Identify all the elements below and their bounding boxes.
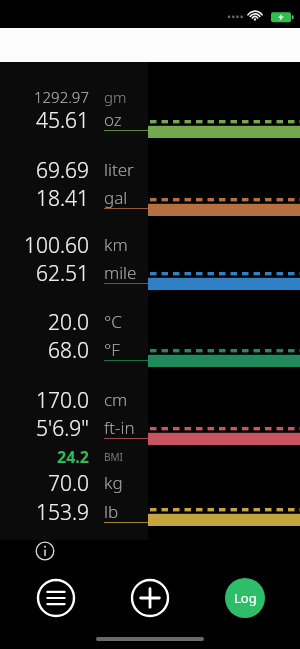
staticText: kg bbox=[104, 471, 123, 494]
button[interactable]: 100.60 bbox=[0, 231, 300, 258]
button[interactable]: 18.41 bbox=[0, 184, 300, 211]
staticText: 5'6.9" bbox=[36, 414, 89, 441]
button[interactable]: 20.0 bbox=[0, 308, 300, 335]
staticText: 20.0 bbox=[47, 308, 89, 335]
staticText: 18.41 bbox=[35, 184, 89, 211]
staticText: cm bbox=[104, 388, 128, 411]
staticText: oz bbox=[104, 108, 122, 131]
staticText: km bbox=[104, 233, 128, 256]
button[interactable]: 68.0 bbox=[0, 336, 300, 363]
staticText: 100.60 bbox=[23, 231, 89, 258]
staticText: gal bbox=[104, 186, 128, 209]
staticText: 62.51 bbox=[35, 259, 89, 286]
button[interactable]: Info bbox=[34, 540, 56, 562]
staticText: ft-in bbox=[104, 416, 135, 439]
staticText: 1292.97 bbox=[33, 87, 89, 107]
staticText: 170.0 bbox=[35, 386, 89, 413]
staticText: mile bbox=[104, 261, 137, 284]
staticText: Log bbox=[234, 589, 257, 607]
button[interactable]: 45.61 bbox=[0, 106, 300, 133]
staticText: lb bbox=[104, 500, 119, 523]
staticText: gm bbox=[104, 87, 127, 107]
button[interactable]: 170.0 bbox=[0, 386, 300, 413]
staticText: °F bbox=[104, 338, 120, 361]
button[interactable]: 5'6.9" bbox=[0, 414, 300, 441]
button[interactable]: 62.51 bbox=[0, 259, 300, 286]
staticText: °C bbox=[104, 310, 122, 333]
button[interactable]: Menu bbox=[36, 578, 76, 618]
staticText: liter bbox=[104, 158, 134, 181]
staticText: 69.69 bbox=[35, 156, 89, 183]
staticText: 70.0 bbox=[47, 469, 89, 496]
button[interactable]: 24.2 bbox=[0, 445, 300, 468]
button[interactable]: 1292.97 bbox=[0, 83, 300, 110]
button[interactable]: Add bbox=[130, 578, 170, 618]
staticText: 45.61 bbox=[35, 106, 89, 133]
staticText: 153.9 bbox=[35, 498, 89, 525]
button[interactable]: Log bbox=[225, 578, 265, 618]
staticText: 68.0 bbox=[47, 336, 89, 363]
button[interactable]: 69.69 bbox=[0, 156, 300, 183]
button[interactable]: 70.0 bbox=[0, 469, 300, 496]
staticText: 24.2 bbox=[57, 446, 89, 468]
button[interactable]: 153.9 bbox=[0, 498, 300, 525]
staticText: BMI bbox=[104, 450, 123, 464]
